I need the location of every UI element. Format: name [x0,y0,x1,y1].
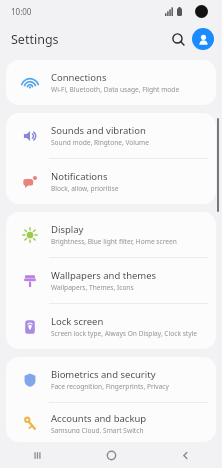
button[interactable]: Wallpapers and themes [6,258,216,303]
staticText: Lock screen [51,315,104,328]
button[interactable]: Recents [0,442,74,468]
staticText: Screen lock type, Always On Display, Clo… [51,329,197,338]
staticText: Brightness, Blue light filter, Home scre… [51,237,177,246]
staticText: Block, allow, prioritise [51,184,119,193]
staticText: Biometrics and security [51,368,156,381]
button[interactable]: Notifications [6,159,216,204]
staticText: Wallpapers and themes [51,269,157,282]
staticText: Sound mode, Ringtone, Volume [51,138,149,147]
staticText: Notifications [51,170,108,183]
staticText: Samsung Cloud, Smart Switch [51,426,144,433]
staticText: Connections [51,71,107,84]
staticText: Face recognition, Fingerprints, Privacy [51,382,169,391]
button[interactable]: Search [166,27,190,51]
staticText: Display [51,223,84,236]
staticText: Sounds and vibration [51,124,146,137]
button[interactable]: Sounds and vibration [6,113,216,158]
button[interactable]: Display [6,212,216,257]
button[interactable]: Home [74,442,148,468]
button[interactable]: Back [148,442,222,468]
staticText: Accounts and backup [51,412,147,425]
button[interactable]: Biometrics and security [6,357,216,402]
button[interactable]: Connections [6,60,216,105]
button[interactable]: Accounts and backup [6,403,216,442]
staticText: Wi-Fi, Bluetooth, Data usage, Flight mod… [51,85,180,94]
staticText: Settings [11,31,59,48]
button[interactable]: Account [192,28,214,50]
staticText: 10:00 [11,6,32,17]
staticText: Wallpapers, Themes, Icons [51,283,134,292]
button[interactable]: Lock screen [6,304,216,349]
